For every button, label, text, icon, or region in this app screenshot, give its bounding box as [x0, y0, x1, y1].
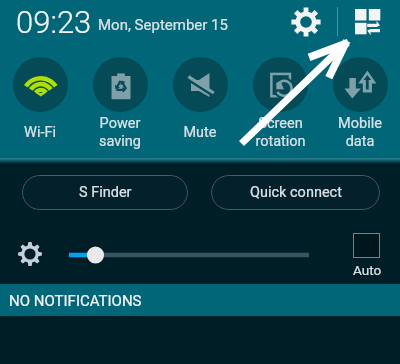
staticText: Mute	[183, 124, 217, 141]
button[interactable]: Mute	[160, 50, 240, 155]
button[interactable]: Mobile data	[320, 50, 400, 155]
staticText: S Finder	[79, 184, 132, 201]
button[interactable]: Screen rotation	[240, 50, 320, 155]
staticText: Auto	[353, 262, 382, 278]
staticText: Power saving	[99, 115, 141, 150]
staticText: Wi-Fi	[24, 124, 56, 141]
button[interactable]: Power saving	[80, 50, 160, 155]
staticText: Screen rotation	[255, 115, 306, 150]
button[interactable]: Edit quick settings	[355, 9, 380, 33]
staticText: Mobile data	[338, 115, 382, 150]
button[interactable]: S Finder	[22, 175, 188, 210]
button[interactable]: Settings	[288, 4, 324, 40]
button[interactable]: Brightness settings	[17, 241, 43, 267]
staticText: NO NOTIFICATIONS	[9, 292, 142, 310]
staticText: Quick connect	[250, 184, 342, 201]
button[interactable]: Wi-Fi	[0, 50, 80, 155]
staticText: Mon, September 15	[98, 16, 228, 34]
button[interactable]: Auto	[343, 229, 391, 281]
button[interactable]: Brightness slider	[56, 244, 324, 266]
staticText: 09:23	[16, 4, 92, 40]
button[interactable]: Quick connect	[211, 175, 380, 210]
